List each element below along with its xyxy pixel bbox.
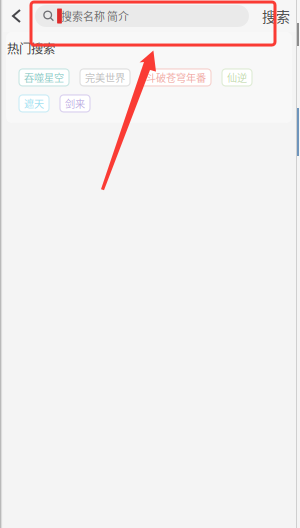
button[interactable]: 剑来 xyxy=(60,95,90,112)
staticText: 仙逆 xyxy=(227,70,247,85)
button[interactable]: 遮天 xyxy=(19,95,49,112)
button[interactable]: 搜索名称 简介 xyxy=(29,5,249,27)
staticText: 搜索名称 简介 xyxy=(61,8,129,24)
button[interactable]: 斗破苍穹年番 xyxy=(141,69,211,86)
staticText: 斗破苍穹年番 xyxy=(146,70,206,85)
button[interactable]: 搜索 xyxy=(249,0,300,32)
staticText: 遮天 xyxy=(24,96,44,111)
button[interactable]: 吞噬星空 xyxy=(19,69,69,86)
staticText: 吞噬星空 xyxy=(24,70,64,85)
button[interactable]: 仙逆 xyxy=(222,69,252,86)
staticText: 完美世界 xyxy=(85,70,125,85)
button[interactable]: Back xyxy=(4,0,29,32)
button[interactable]: 完美世界 xyxy=(80,69,130,86)
staticText: 剑来 xyxy=(65,96,85,111)
staticText: 搜索 xyxy=(262,6,290,26)
staticText: 热门搜索 xyxy=(7,39,55,57)
